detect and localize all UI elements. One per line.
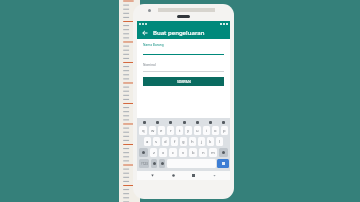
staticText: t [179,128,181,134]
staticText: n [202,150,205,156]
staticText: k [209,139,212,145]
button[interactable]: Back [140,28,150,38]
button[interactable]: Keyboard tool 0 [141,119,147,125]
button[interactable]: b [189,148,197,157]
button[interactable]: k [207,137,214,146]
button[interactable]: Keyboard tool 2 [167,119,173,125]
button[interactable]: x [159,148,167,157]
button[interactable]: Back [137,26,230,39]
staticText: p [223,128,226,134]
button[interactable]: c [169,148,177,157]
button[interactable]: r [167,126,174,135]
staticText: j [201,139,203,145]
button[interactable]: i [203,126,210,135]
button[interactable]: e [158,126,165,135]
staticText: v [182,150,185,156]
staticText: y [187,128,190,134]
staticText: ?123 [141,162,148,166]
staticText: x [162,150,165,156]
button[interactable]: Nama Barang [143,43,224,55]
button[interactable]: Keyboard tool 1 [154,119,160,125]
button[interactable]: a [144,137,151,146]
button[interactable]: SIMPAN [143,77,224,86]
button[interactable]: w [149,126,156,135]
button[interactable]: o [212,126,219,135]
staticText: g [182,139,185,145]
button[interactable]: Emoji [159,159,165,168]
button[interactable]: p [221,126,228,135]
button[interactable]: f [171,137,178,146]
button[interactable]: Shift [139,148,148,157]
button[interactable]: Keyboard tool 4 [194,119,200,125]
button[interactable]: h [189,137,196,146]
button[interactable]: j [198,137,205,146]
button[interactable]: Keyboard tool 5 [207,119,213,125]
staticText: r [170,128,172,134]
staticText: s [155,139,158,145]
button[interactable]: y [185,126,192,135]
button[interactable]: q [139,126,147,135]
button[interactable]: g [180,137,187,146]
button[interactable]: Keyboard tool 3 [181,119,187,125]
staticText: d [164,139,167,145]
staticText: h [191,139,194,145]
staticText: i [206,128,208,134]
staticText: w [151,128,155,134]
staticText: Buat pengeluaran [153,29,205,37]
button[interactable]: Keyboard tool 6 [220,119,226,125]
button[interactable]: u [194,126,201,135]
staticText: a [146,139,149,145]
staticText: o [214,128,217,134]
button[interactable]: Backspace [219,148,228,157]
button[interactable]: z [150,148,157,157]
button[interactable]: Recents [189,171,198,180]
button[interactable]: Home [169,171,178,180]
button[interactable]: m [209,148,217,157]
staticText: u [196,128,199,134]
button[interactable]: n [199,148,207,157]
button[interactable]: d [162,137,169,146]
staticText: f [174,139,176,145]
button[interactable]: Back [148,171,157,180]
button[interactable]: Nominal [143,63,224,72]
button[interactable]: s [153,137,160,146]
button[interactable]: Hide keyboard [210,171,219,180]
staticText: SIMPAN [177,79,191,84]
staticText: b [192,150,195,156]
staticText: Nominal [143,63,156,67]
button[interactable]: Numbers [139,159,149,168]
staticText: Nama Barang [143,43,164,47]
staticText: e [160,128,163,134]
staticText: q [142,128,145,134]
staticText: z [153,150,155,156]
staticText: l [219,139,221,145]
button[interactable]: l [216,137,223,146]
staticText: c [172,150,175,156]
button[interactable]: Comma [151,159,157,168]
button[interactable]: t [176,126,183,135]
button[interactable]: v [179,148,187,157]
button[interactable]: Enter [217,159,229,168]
staticText: m [211,150,215,156]
